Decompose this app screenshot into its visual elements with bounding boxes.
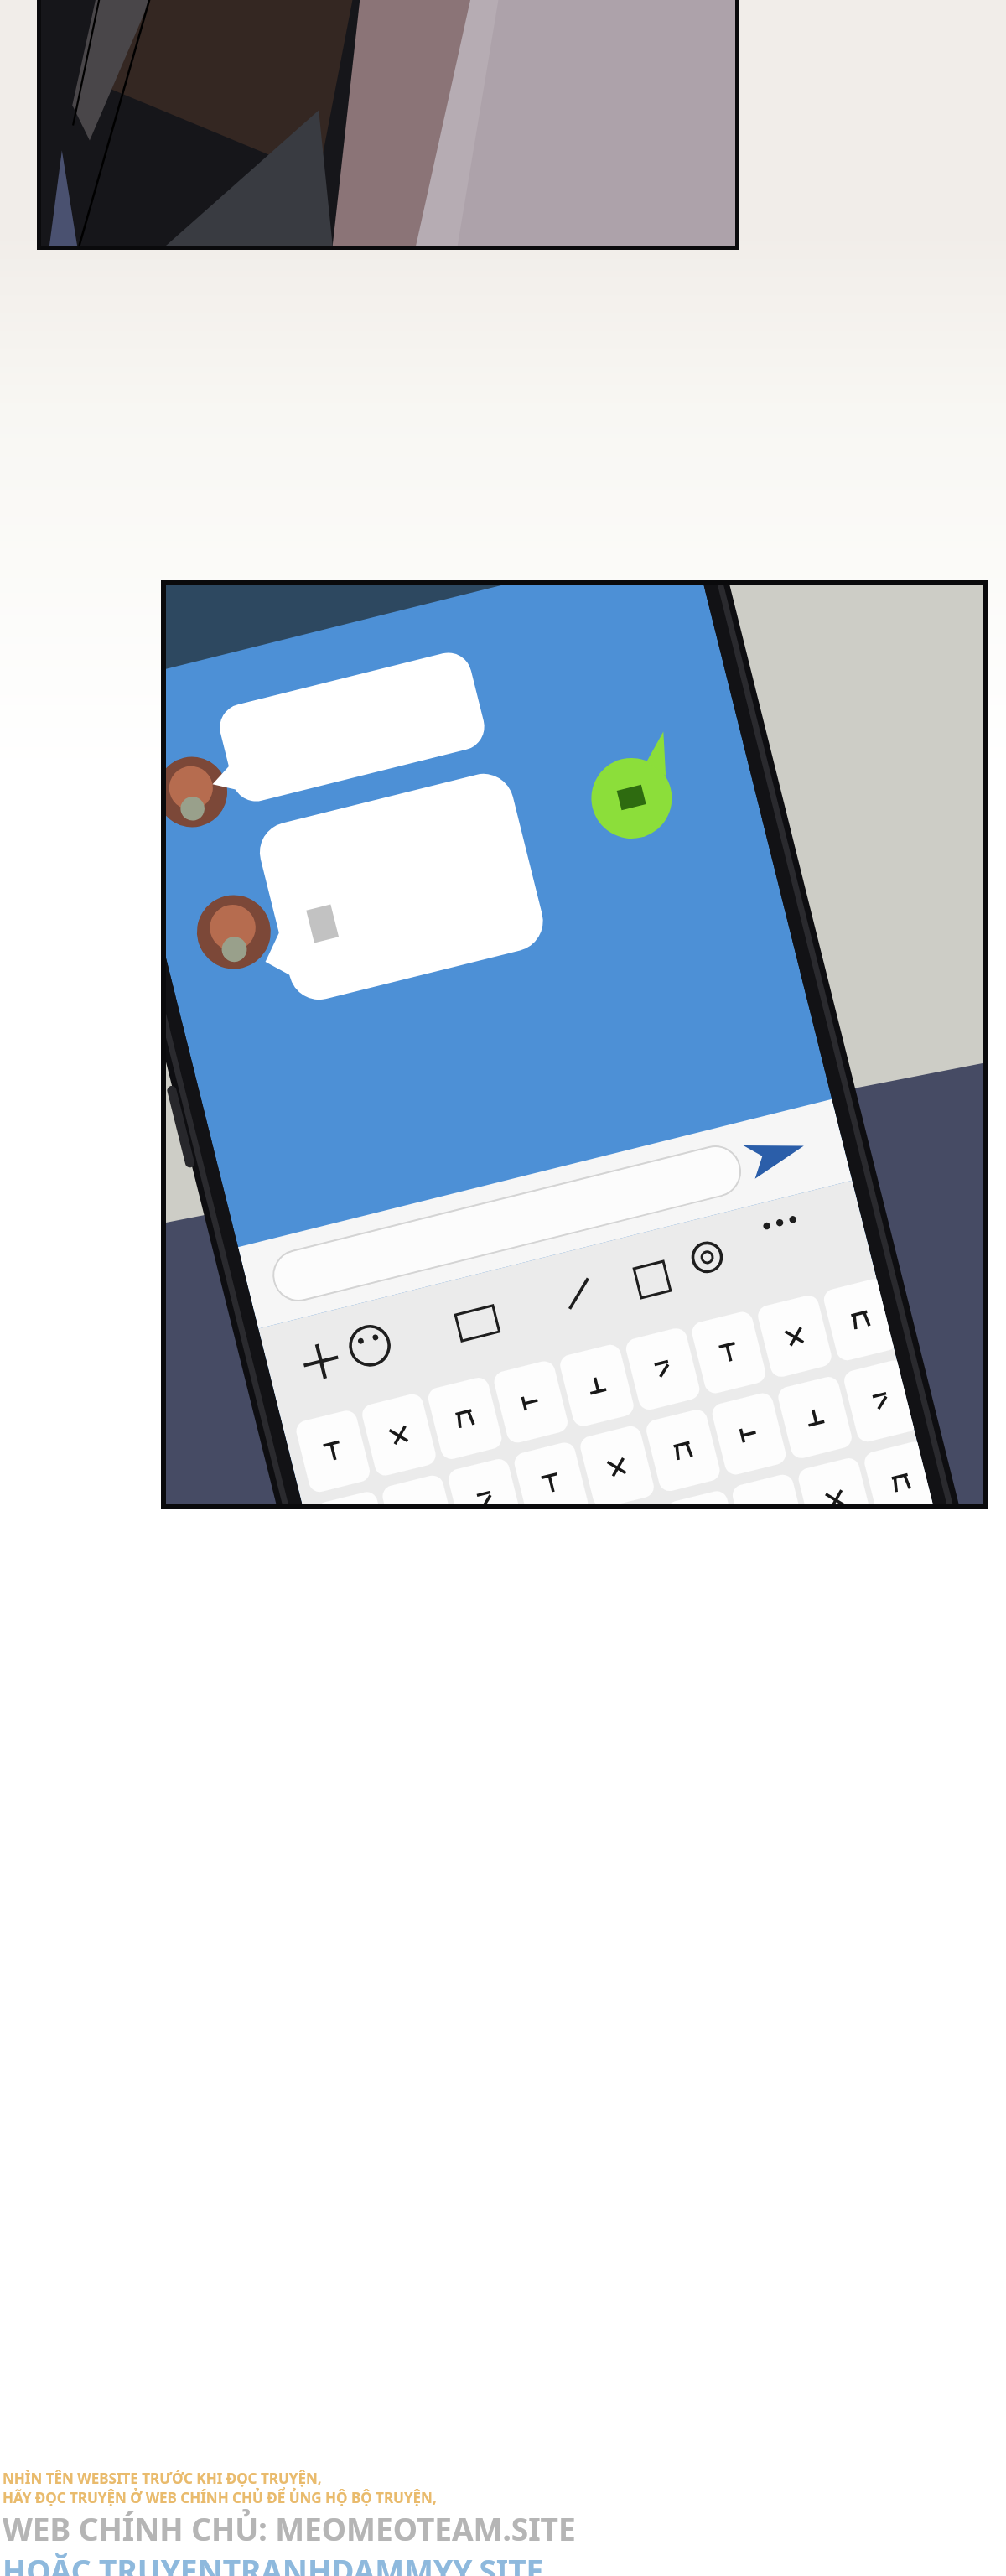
button[interactable]: NHÌN TÊN WEBSITE TRƯỚC KHI ĐỌC TRUYỆN,: [3, 2469, 576, 2576]
staticText: WEB CHÍNH CHỦ: MEOMEOTEAM.SITE: [3, 2507, 576, 2549]
staticText: NHÌN TÊN WEBSITE TRƯỚC KHI ĐỌC TRUYỆN,: [3, 2469, 322, 2488]
staticText: HOẶC TRUYENTRANHDAMMYY.SITE: [3, 2549, 544, 2576]
staticText: HÃY ĐỌC TRUYỆN Ở WEB CHÍNH CHỦ ĐỂ ỦNG HỘ…: [3, 2488, 437, 2507]
